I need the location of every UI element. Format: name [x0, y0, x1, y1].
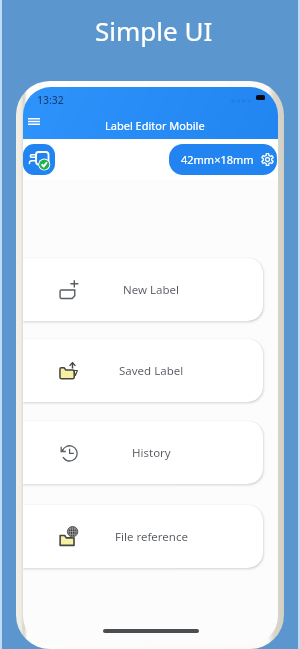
- button[interactable]: 42mm×18mm: [169, 144, 277, 175]
- button[interactable]: Menu: [23, 111, 44, 131]
- staticText: File reference: [115, 529, 188, 545]
- button[interactable]: Printer connected: [23, 144, 55, 175]
- button[interactable]: File reference: [23, 505, 263, 568]
- button[interactable]: Saved Label: [23, 339, 263, 402]
- staticText: Saved Label: [119, 363, 184, 379]
- staticText: 42mm×18mm: [181, 152, 254, 167]
- staticText: New Label: [123, 282, 180, 298]
- staticText: 13:32: [37, 93, 64, 107]
- staticText: History: [132, 445, 171, 461]
- button[interactable]: History: [23, 421, 263, 484]
- button[interactable]: New Label: [23, 258, 263, 321]
- staticText: Label Editor Mobile: [105, 118, 205, 133]
- staticText: Simple UI: [95, 13, 213, 48]
